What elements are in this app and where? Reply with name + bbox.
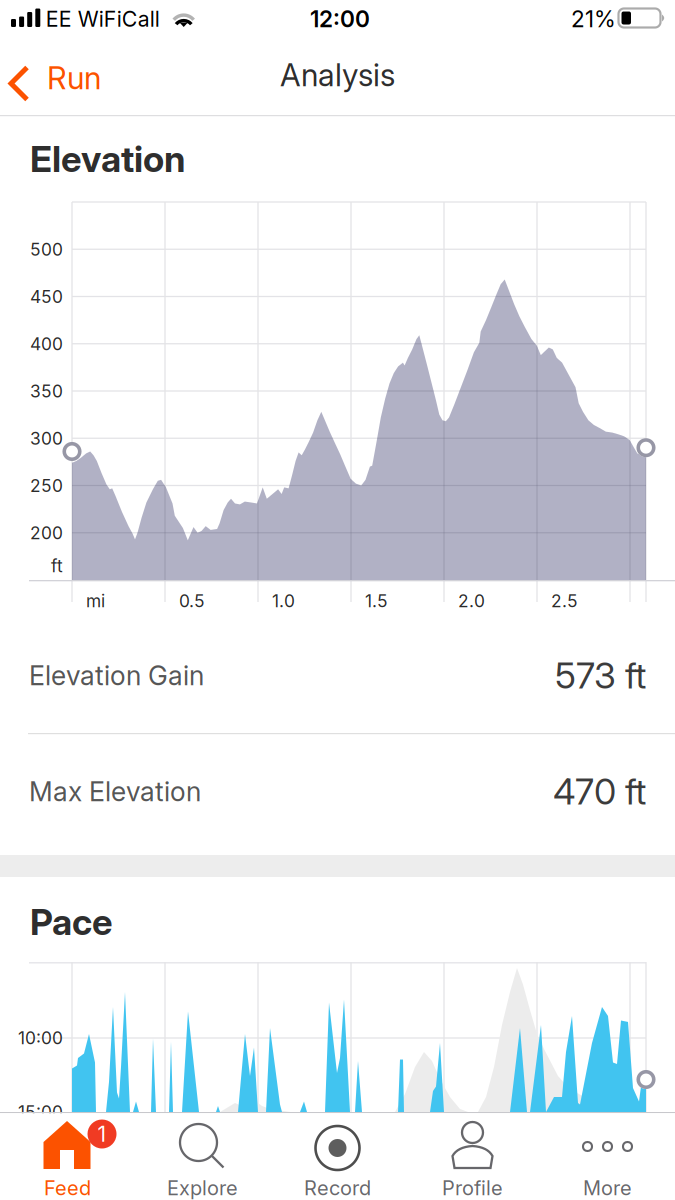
staticText: 500	[30, 239, 63, 260]
staticText: 300	[30, 428, 63, 449]
staticText: 200	[30, 523, 63, 543]
button[interactable]: 1	[0, 1112, 135, 1200]
staticText: 1	[97, 1121, 106, 1147]
button[interactable]: Record	[270, 1112, 405, 1200]
staticText: 2.5	[551, 591, 578, 611]
staticText: EE WiFiCall	[46, 6, 160, 32]
staticText: Elevation Gain	[29, 660, 204, 691]
staticText: Record	[304, 1176, 371, 1200]
staticText: 10:00	[18, 1028, 63, 1048]
staticText: 350	[30, 381, 63, 401]
staticText: ft	[51, 556, 63, 576]
staticText: 2.0	[458, 591, 485, 611]
button[interactable]: Explore	[135, 1112, 270, 1200]
staticText: 1.0	[272, 591, 295, 611]
staticText: 1.5	[365, 591, 388, 611]
staticText: Profile	[442, 1176, 503, 1200]
staticText: Feed	[44, 1176, 91, 1200]
staticText: More	[583, 1176, 632, 1200]
staticText: 0.5	[179, 591, 205, 611]
staticText: 12:00	[310, 6, 370, 32]
staticText: 470 ft	[553, 770, 646, 813]
staticText: Explore	[167, 1176, 238, 1200]
staticText: 450	[30, 287, 63, 307]
staticText: Elevation	[30, 138, 185, 180]
button[interactable]: Run	[0, 51, 112, 115]
staticText: 21%	[571, 6, 616, 32]
staticText: Run	[47, 60, 101, 96]
staticText: 15:00	[18, 1102, 63, 1122]
staticText: mi	[86, 591, 105, 611]
button[interactable]: Profile	[405, 1112, 540, 1200]
staticText: 400	[30, 334, 63, 354]
staticText: Pace	[30, 901, 113, 943]
staticText: Analysis	[280, 57, 395, 93]
staticText: Max Elevation	[29, 776, 201, 807]
staticText: 250	[30, 476, 63, 496]
button[interactable]: More	[540, 1112, 675, 1200]
staticText: 573 ft	[555, 654, 646, 697]
